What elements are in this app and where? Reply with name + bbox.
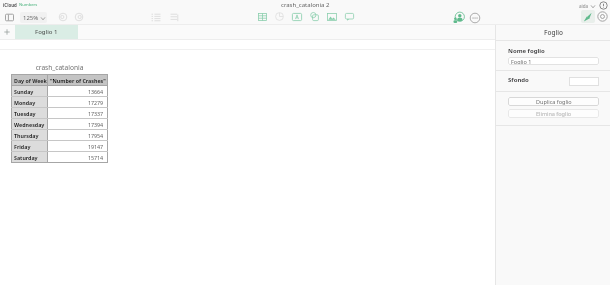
staticText: Foglio 1 [35,28,58,36]
button[interactable]: aida [578,3,596,9]
button[interactable]: Undo [57,11,69,23]
button[interactable]: 125% [20,12,47,23]
button[interactable]: Sort and filter [170,13,180,22]
staticText: crash_catalonia [11,63,108,72]
staticText: Foglio 1 [511,58,532,65]
staticText: Friday [14,143,31,150]
button[interactable]: Foglio 1 [15,25,78,39]
staticText: "Number of Crashes" [50,77,106,84]
staticText: Wednesday [14,121,45,128]
staticText: 17394 [88,121,104,128]
button[interactable]: Formatting [151,13,161,22]
staticText: Duplica foglio [536,98,572,105]
button[interactable]: Foglio 1 [508,57,599,65]
staticText: Monday [14,99,36,106]
button[interactable]: More options [469,12,481,24]
staticText: Sfondo [508,76,529,84]
button[interactable]: Toggle sidebar [5,13,14,22]
staticText: 17279 [88,99,104,106]
button[interactable]: Insert chart [275,12,284,21]
button[interactable]: Insert table [258,13,267,21]
staticText: 125% [23,14,39,22]
button[interactable]: Duplica foglio [508,97,599,106]
button[interactable]: Insert image [327,13,337,21]
staticText: Elimina foglio [536,110,572,117]
button[interactable]: Add sheet [0,25,15,39]
staticText: 17337 [88,110,104,117]
button[interactable]: Help [599,1,608,10]
staticText: Tuesday [14,110,36,117]
button[interactable]: Document settings [596,10,609,23]
staticText: 19147 [88,143,104,150]
staticText: Numbers [19,2,38,8]
staticText: Sunday [14,88,34,95]
button[interactable]: Insert shape [310,12,319,21]
button[interactable]: Background colour [569,77,599,86]
button[interactable]: Format [581,10,595,23]
staticText: Foglio [544,28,563,37]
staticText: crash_catalonia 2 [281,1,330,9]
staticText: iCloud [3,2,17,8]
staticText: Day of Week [14,77,47,84]
staticText: Nome foglio [508,47,545,55]
button[interactable]: Redo [73,11,85,23]
button[interactable]: Elimina foglio [508,109,599,118]
staticText: aida [579,3,589,9]
staticText: Saturday [14,154,38,161]
button[interactable]: Share and collaborate [452,11,465,24]
staticText: Thursday [14,132,39,139]
staticText: 17954 [88,132,104,139]
staticText: 15714 [88,154,104,161]
staticText: 13664 [88,88,104,95]
button[interactable]: Insert text box [292,13,302,21]
button[interactable]: Add comment [345,13,354,21]
